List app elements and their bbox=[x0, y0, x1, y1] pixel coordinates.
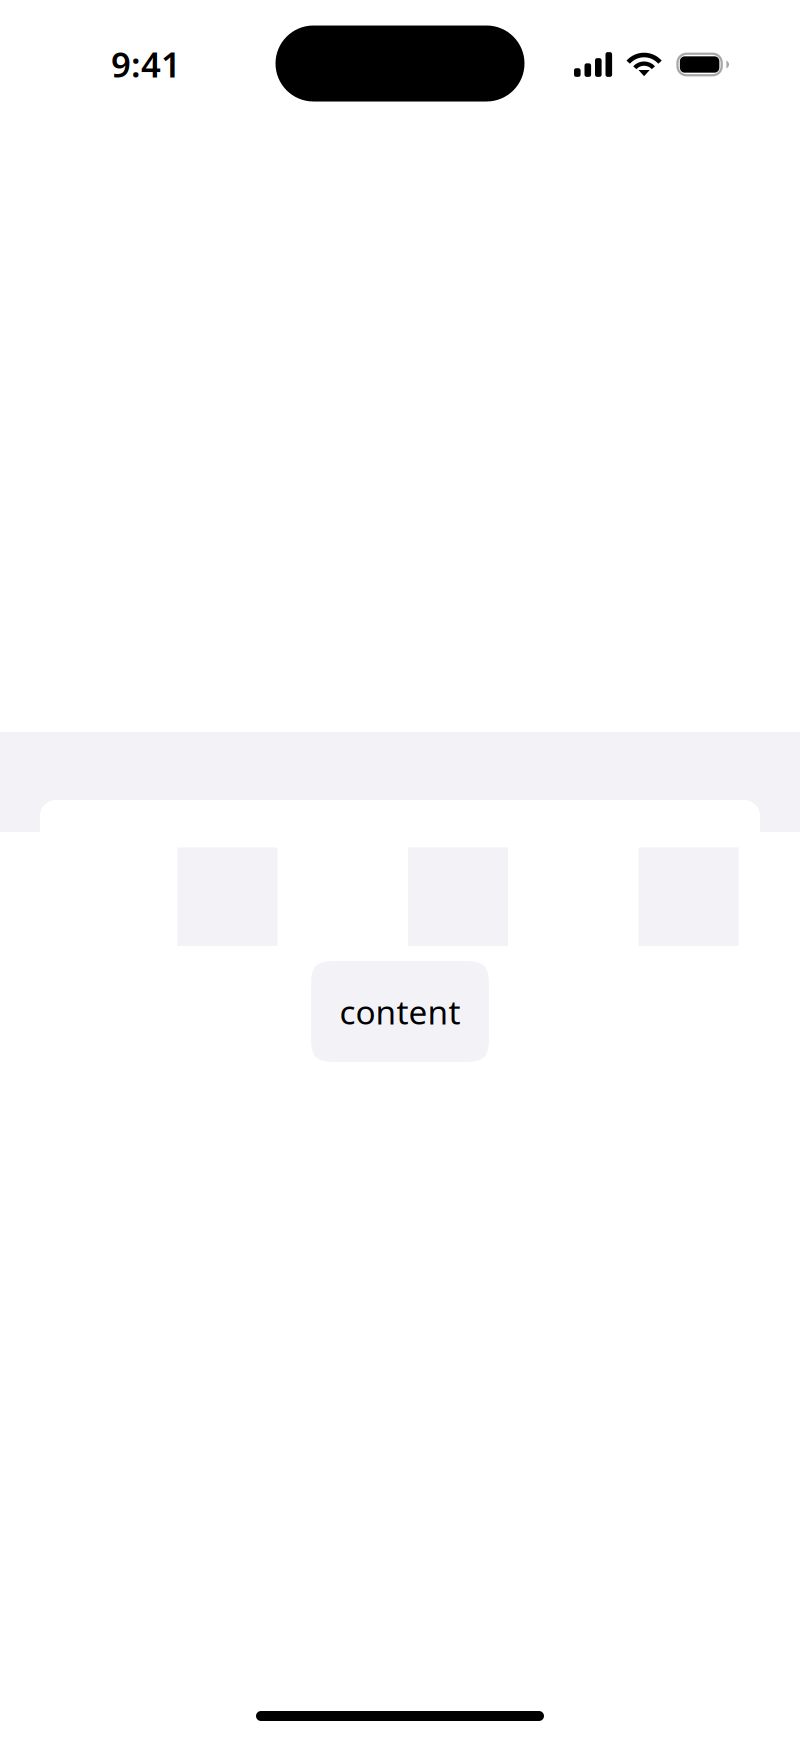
staticText: content bbox=[339, 989, 460, 1034]
button[interactable]: content bbox=[311, 961, 489, 1062]
staticText: 9:41 bbox=[111, 41, 181, 87]
